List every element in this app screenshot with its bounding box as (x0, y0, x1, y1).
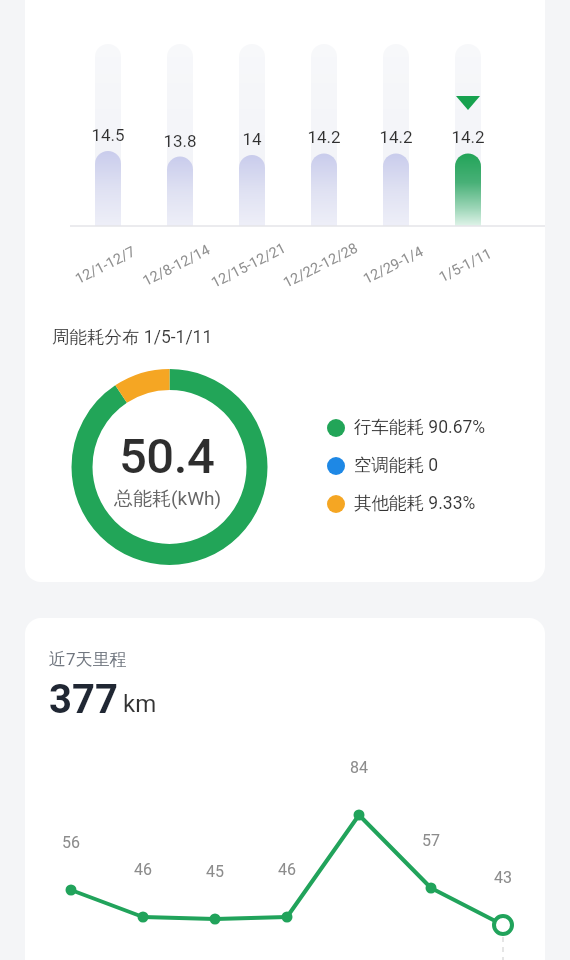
staticText: 12/15-12/21 (209, 239, 289, 292)
staticText: 14 (242, 129, 262, 149)
staticText: 12/8-12/14 (140, 241, 214, 290)
button[interactable]: 行车能耗 90.67% (354, 416, 486, 438)
staticText: 其他能耗 9.33% (354, 492, 476, 514)
staticText: 13.8 (163, 131, 197, 151)
staticText: 14.5 (91, 125, 125, 145)
staticText: 14.2 (379, 127, 413, 147)
staticText: 12/22-12/28 (281, 239, 361, 292)
staticText: 50.4 (119, 428, 215, 485)
staticText: 57 (422, 831, 440, 850)
staticText: 行车能耗 90.67% (354, 416, 486, 438)
staticText: 近7天里程 (49, 649, 127, 670)
button[interactable]: 空调能耗 0 (354, 454, 439, 476)
staticText: 12/29-1/4 (361, 243, 426, 288)
button[interactable] (25, 618, 545, 960)
staticText: 84 (350, 758, 368, 777)
staticText: 377 (49, 676, 118, 723)
staticText: 14.2 (451, 127, 485, 147)
staticText: 1/5-1/11 (436, 245, 495, 286)
staticText: km (123, 690, 157, 718)
staticText: 46 (278, 860, 296, 879)
staticText: 总能耗(kWh) (114, 487, 222, 511)
button[interactable]: 其他能耗 9.33% (354, 492, 476, 514)
staticText: 45 (206, 862, 224, 881)
staticText: 空调能耗 0 (354, 454, 439, 476)
staticText: 14.2 (307, 127, 341, 147)
staticText: 56 (62, 833, 80, 852)
staticText: 46 (134, 860, 152, 879)
staticText: 周能耗分布 1/5-1/11 (52, 326, 213, 348)
staticText: 12/1-12/7 (73, 243, 138, 288)
staticText: 43 (494, 868, 512, 887)
